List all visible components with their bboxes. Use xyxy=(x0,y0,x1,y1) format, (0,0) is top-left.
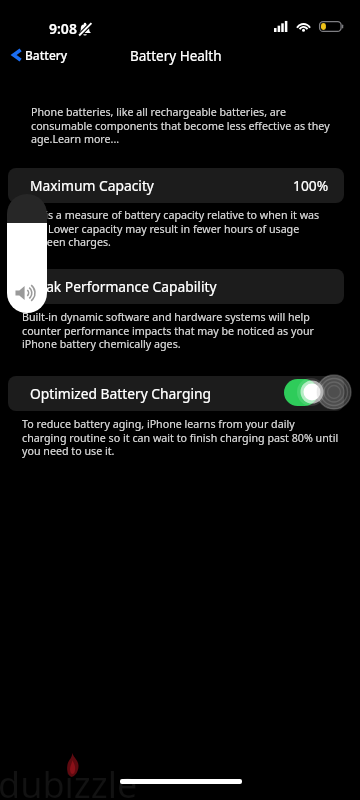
button[interactable]: Optimized Battery Charging toggle xyxy=(284,379,318,406)
staticText: Peak Performance Capability xyxy=(30,277,217,296)
other: Volume xyxy=(7,194,47,313)
staticText: To reduce battery aging, iPhone learns f… xyxy=(22,417,339,458)
button[interactable]: Peak Performance Capability xyxy=(8,269,344,304)
staticText: 100% xyxy=(293,176,329,195)
staticText: 9:08 xyxy=(49,19,77,38)
staticText: Optimized Battery Charging xyxy=(30,384,211,403)
staticText: Maximum Capacity xyxy=(30,176,154,195)
staticText: Battery xyxy=(25,47,68,63)
staticText: dubizzle xyxy=(0,760,138,800)
staticText: Built-in dynamic software and hardware s… xyxy=(22,310,314,351)
button[interactable]: Back to Battery xyxy=(12,47,68,63)
staticText: Battery Health xyxy=(130,47,222,65)
button[interactable]: Maximum Capacity xyxy=(8,168,344,203)
other: Silent mode xyxy=(78,22,92,36)
staticText: Phone batteries, like all rechargeable b… xyxy=(31,105,330,146)
button[interactable]: Optimized Battery Charging xyxy=(8,376,344,411)
staticText: This is a measure of battery capacity re… xyxy=(22,208,320,249)
